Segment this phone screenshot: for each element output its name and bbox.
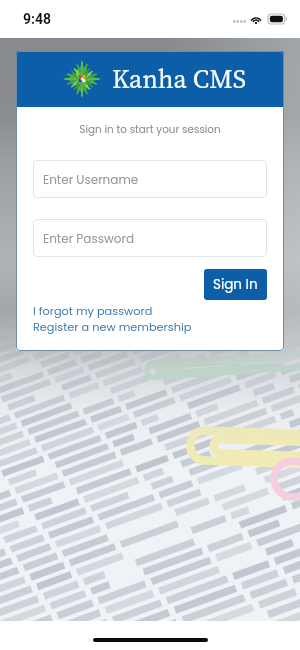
staticText: Kanha CMS — [112, 61, 247, 97]
button[interactable]: Sign In — [204, 269, 267, 300]
staticText: Enter Username — [43, 171, 139, 188]
staticText: Sign in to start your session — [33, 122, 267, 137]
button[interactable]: Enter Username — [33, 160, 267, 198]
staticText: 9:48 — [23, 11, 52, 27]
button[interactable]: Register a new membership — [33, 319, 192, 335]
button[interactable]: Enter Password — [33, 219, 267, 257]
staticText: Enter Password — [43, 230, 135, 247]
staticText: Sign In — [213, 275, 258, 294]
button[interactable]: I forgot my password — [33, 303, 153, 319]
